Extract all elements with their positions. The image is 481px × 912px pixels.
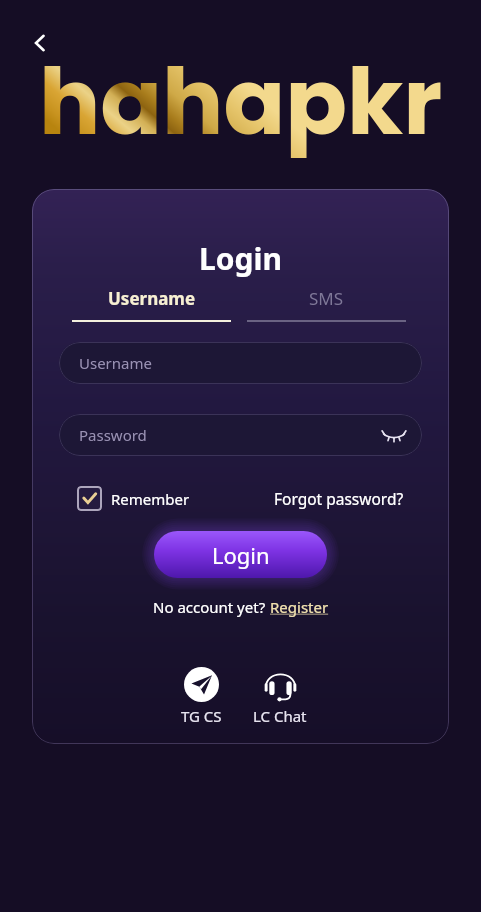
staticText: No account yet? [153, 597, 270, 617]
staticText: Login [212, 540, 270, 570]
other: Telegram customer service [184, 667, 219, 702]
staticText: Forgot password? [274, 488, 404, 509]
staticText: Username [79, 353, 152, 373]
button[interactable]: Show password [380, 421, 408, 449]
button[interactable]: Telegram customer service [171, 667, 231, 726]
staticText: Password [79, 425, 147, 445]
staticText: LC Chat [253, 706, 307, 726]
staticText: Login [199, 238, 282, 279]
staticText: Register [270, 597, 329, 617]
staticText: SMS [309, 287, 344, 310]
staticText: hahapkr [39, 38, 443, 165]
button[interactable]: Login [154, 531, 327, 578]
staticText: Username [108, 287, 196, 310]
button[interactable]: Username [59, 342, 422, 384]
button[interactable]: Password [59, 414, 422, 456]
staticText: Remember [111, 489, 190, 509]
button[interactable]: Remember [77, 486, 190, 511]
other: Live chat [263, 667, 298, 702]
button[interactable]: Live chat [250, 667, 310, 726]
button[interactable]: SMS [247, 287, 406, 322]
button[interactable]: Forgot password? [274, 488, 404, 509]
button[interactable]: Username [72, 287, 231, 322]
button[interactable]: Register [270, 597, 329, 617]
staticText: TG CS [181, 706, 222, 726]
button[interactable]: Back [22, 25, 58, 61]
